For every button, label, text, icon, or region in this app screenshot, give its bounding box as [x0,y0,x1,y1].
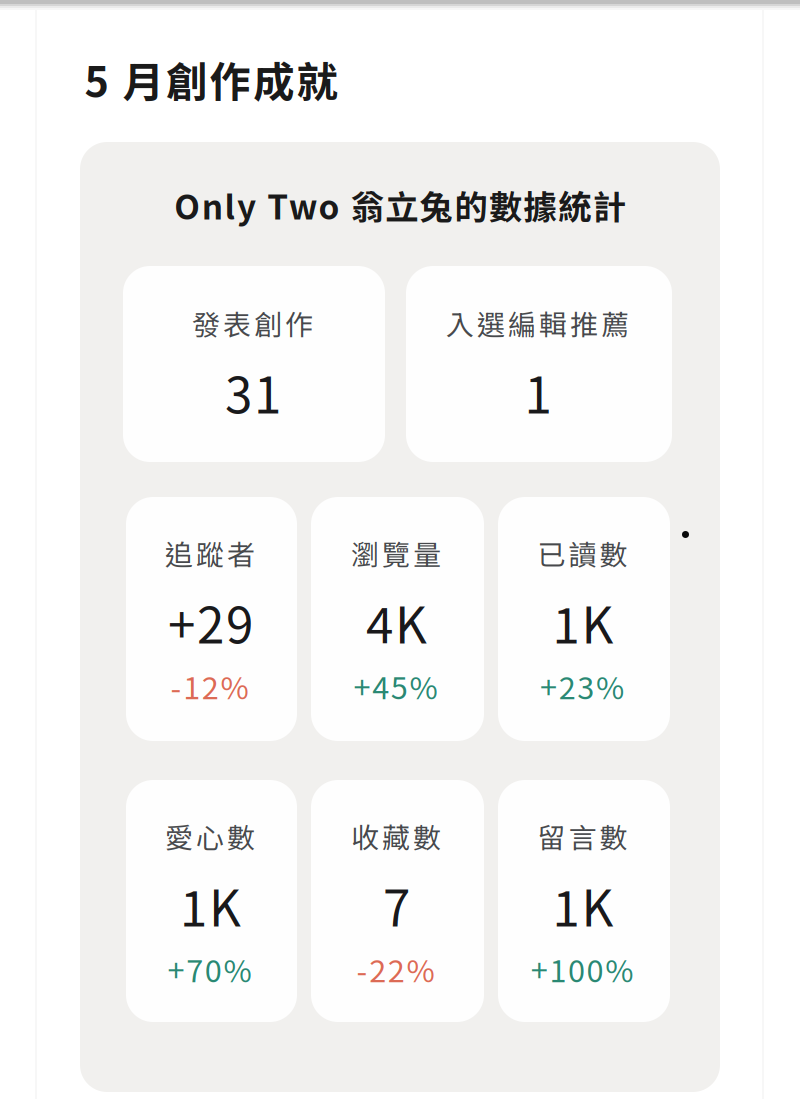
staticText: 1K [552,586,613,658]
staticText: +45% [354,664,437,708]
staticText: 1 [524,356,551,428]
button[interactable]: 瀏覽量 [311,497,484,741]
staticText: 發表創作 [192,303,313,343]
button[interactable]: 愛心數 [126,780,297,1022]
staticText: 留言數 [537,816,627,856]
staticText: 4K [366,586,427,658]
staticText: 31 [225,356,281,428]
staticText: 1K [552,869,613,941]
staticText: 愛心數 [165,816,255,856]
staticText: +100% [531,947,633,991]
staticText: +70% [168,947,251,991]
staticText: -22% [357,947,434,991]
button[interactable]: 已讀數 [498,497,670,741]
staticText: +23% [540,664,624,708]
staticText: +29 [168,586,253,658]
staticText: 收藏數 [351,816,441,856]
staticText: 5 月創作成就 [84,49,337,109]
button[interactable]: 入選編輯推薦 [406,266,672,462]
button[interactable]: 追蹤者 [126,497,297,741]
staticText: 入選編輯推薦 [446,303,629,343]
staticText: Only Two 翁立兔的數據統計 [174,181,626,229]
staticText: -12% [171,664,248,708]
button[interactable]: 留言數 [498,780,670,1022]
staticText: 瀏覽量 [351,533,441,573]
staticText: 已讀數 [537,533,627,573]
button[interactable]: 收藏數 [311,780,484,1022]
button[interactable]: 發表創作 [123,266,385,462]
staticText: 1K [180,869,241,941]
staticText: 追蹤者 [165,533,255,573]
staticText: 7 [383,869,410,941]
